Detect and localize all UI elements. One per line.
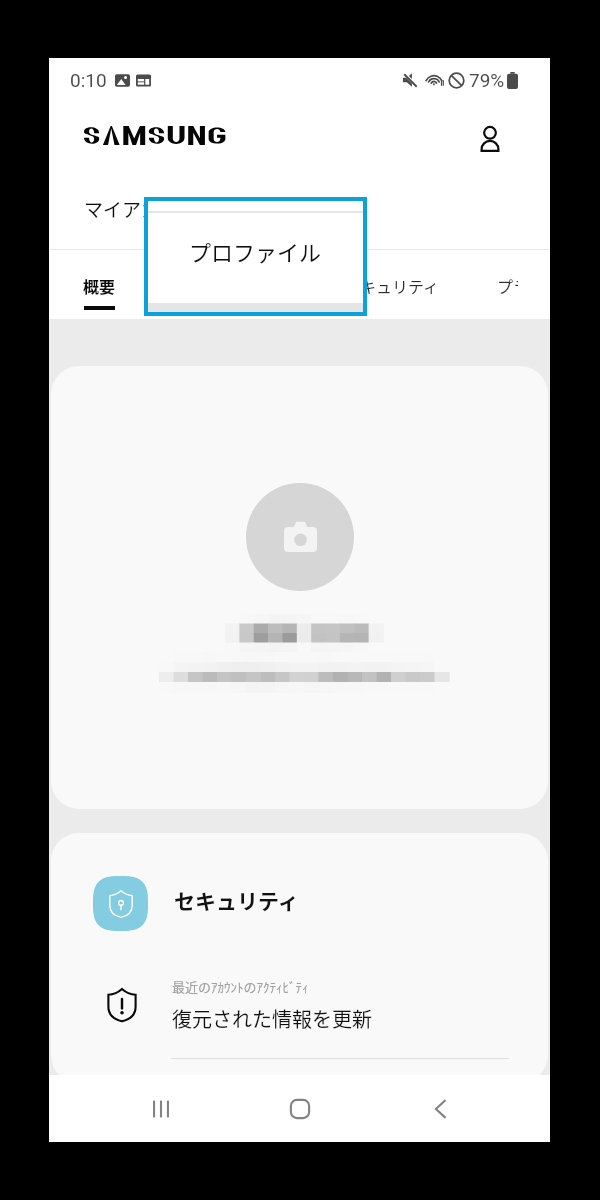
button[interactable]: プロファイル <box>148 201 363 312</box>
button[interactable]: Recents <box>127 1075 194 1142</box>
button[interactable]: プライバシー <box>483 250 550 319</box>
staticText: セキュリティ <box>174 885 299 915</box>
staticText: セキュリティ <box>344 274 440 297</box>
staticText: マイアカウント <box>84 195 218 223</box>
staticText: プライバシー <box>497 274 518 297</box>
button[interactable]: セキュリティ <box>330 250 454 319</box>
staticText: プロファイル <box>189 235 322 267</box>
button[interactable]: Home <box>266 1075 333 1142</box>
button[interactable]: Back <box>406 1075 473 1142</box>
button[interactable]: Account <box>468 118 512 162</box>
staticText: 79% <box>469 69 505 91</box>
button[interactable]: 概要 <box>69 250 129 319</box>
staticText: 0:10 <box>70 69 107 91</box>
button[interactable]: 最近のｱｶｳﾝﾄのｱｸﾃｨﾋﾞﾃｨ <box>51 968 548 1041</box>
staticText: 復元された情報を更新 <box>172 1004 372 1033</box>
button[interactable] <box>51 366 548 809</box>
staticText: 最近のｱｶｳﾝﾄのｱｸﾃｨﾋﾞﾃｨ <box>172 977 309 996</box>
staticText: 概要 <box>83 274 116 297</box>
button[interactable]: Samsung <box>84 126 225 145</box>
